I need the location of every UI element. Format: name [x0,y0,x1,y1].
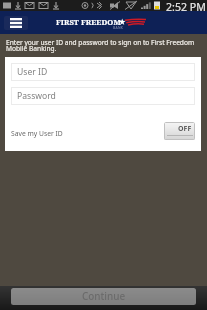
staticText: 2:52 PM [166,0,206,11]
staticText: FIRST FREEDOM [56,17,121,27]
staticText: Save my User ID [11,129,63,138]
button[interactable]: Continue [11,288,196,305]
staticText: Enter your user ID and password to sign … [6,38,198,53]
staticText: Continue [82,289,126,302]
staticText: OFF [178,124,192,134]
button[interactable]: Password [11,87,195,105]
button[interactable]: Save my User ID toggle, off [164,122,195,140]
staticText: Password [17,90,56,102]
staticText: BANK [113,25,124,30]
button[interactable]: User ID [11,63,195,81]
button[interactable]: Open navigation menu [4,16,28,30]
staticText: User ID [17,66,48,78]
